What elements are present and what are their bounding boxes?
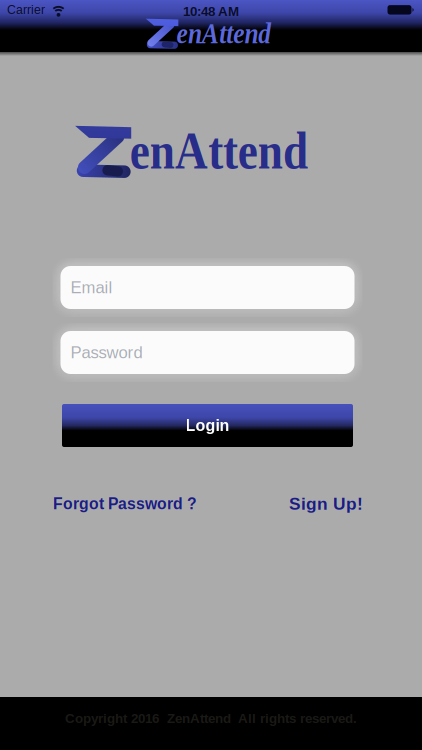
staticText: Forgot Password ? [53, 495, 197, 512]
staticText: 10:48 AM [183, 4, 239, 19]
button[interactable]: Password [64, 331, 358, 374]
button[interactable]: Forgot Password ? [53, 495, 197, 512]
staticText: Email [70, 278, 112, 297]
staticText: Carrier [7, 3, 45, 17]
staticText: enAttend [169, 17, 278, 49]
staticText: Copyright 2016 ZenAttend All rights rese… [65, 711, 357, 726]
staticText: Password [70, 343, 142, 362]
button[interactable]: Login [65, 404, 356, 447]
staticText: Login [185, 417, 229, 434]
staticText: enAttend [116, 122, 321, 180]
staticText: Sign Up! [289, 494, 363, 513]
button[interactable]: Email [64, 266, 358, 309]
button[interactable]: Sign Up! [289, 494, 363, 513]
